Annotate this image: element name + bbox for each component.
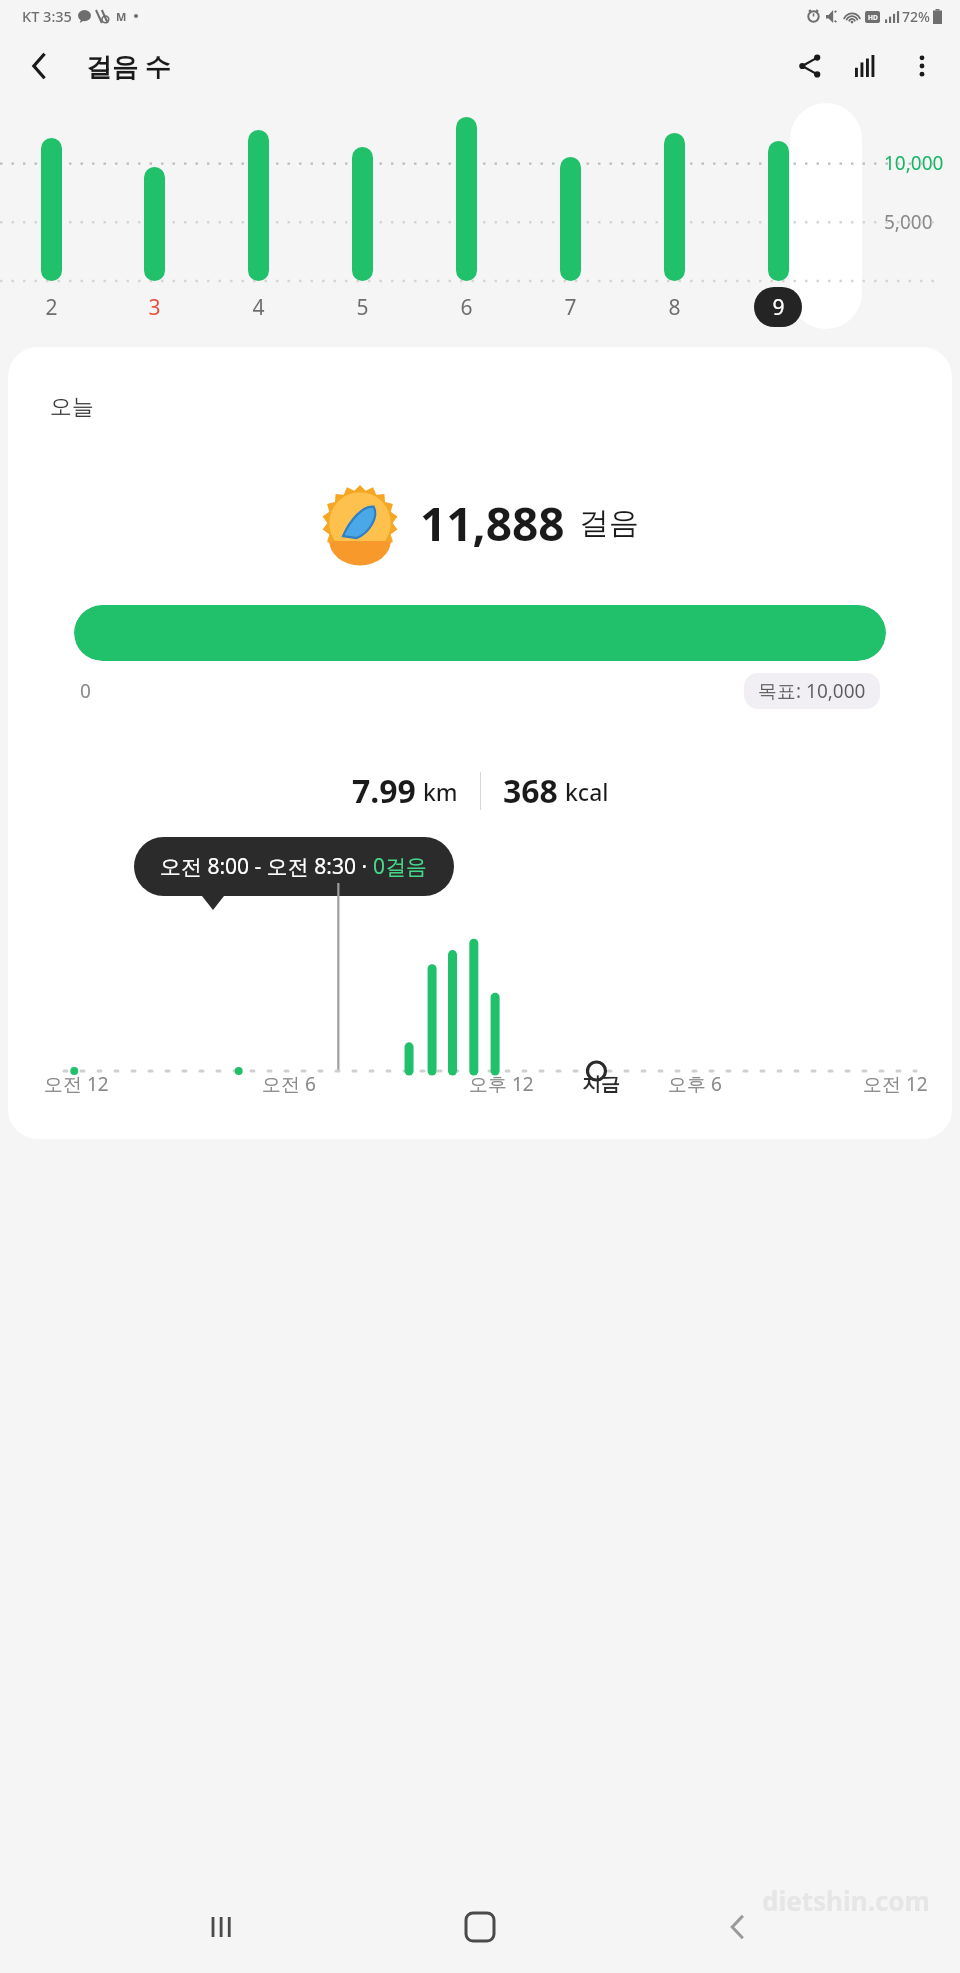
staticText: 오전 6: [262, 1071, 316, 1097]
staticText: kcal: [565, 776, 609, 807]
button[interactable]: Recents: [186, 1891, 258, 1963]
button[interactable]: [622, 99, 726, 281]
staticText: 72%: [902, 7, 930, 26]
button[interactable]: [414, 99, 518, 281]
button[interactable]: Back: [12, 38, 68, 94]
button[interactable]: Chart: [838, 38, 894, 94]
button[interactable]: 오늘: [8, 347, 952, 1139]
staticText: 목표: 10,000: [758, 678, 866, 704]
staticText: 7.99: [352, 769, 416, 813]
staticText: 지금: [582, 1073, 620, 1097]
staticText: 8: [668, 293, 681, 322]
staticText: 4: [252, 293, 265, 322]
staticText: 오후 12: [469, 1071, 534, 1097]
staticText: 오전 12: [44, 1071, 109, 1097]
staticText: M: [116, 9, 127, 24]
button[interactable]: Home: [444, 1891, 516, 1963]
staticText: 오전 8:00 - 오전 8:30 ·: [160, 852, 373, 881]
staticText: 7: [564, 293, 577, 322]
button[interactable]: [0, 99, 103, 281]
staticText: 6: [460, 293, 473, 322]
staticText: 오전 12: [863, 1071, 928, 1097]
staticText: 2: [45, 293, 58, 322]
staticText: 걸음: [579, 504, 639, 542]
staticText: 11,888: [420, 492, 565, 555]
staticText: 오후 6: [668, 1071, 722, 1097]
staticText: 368: [503, 769, 558, 813]
button[interactable]: [310, 99, 414, 281]
staticText: 걸음 수: [86, 48, 171, 84]
staticText: 0걸음: [373, 852, 428, 881]
staticText: 9: [772, 293, 785, 322]
staticText: 오늘: [50, 393, 94, 421]
button[interactable]: Back: [702, 1891, 774, 1963]
staticText: km: [423, 776, 458, 807]
button[interactable]: Share: [782, 38, 838, 94]
staticText: 0: [80, 678, 91, 704]
staticText: HD: [868, 13, 878, 22]
staticText: 3: [148, 293, 161, 322]
button[interactable]: [103, 99, 206, 281]
button[interactable]: More options: [894, 38, 950, 94]
staticText: KT 3:35: [22, 6, 72, 26]
button[interactable]: [206, 99, 310, 281]
staticText: 5,000: [884, 209, 933, 235]
button[interactable]: [518, 99, 622, 281]
staticText: 10,000: [884, 150, 944, 176]
staticText: dietshin.com: [762, 1883, 930, 1918]
button[interactable]: [726, 99, 830, 281]
staticText: 5: [356, 293, 369, 322]
